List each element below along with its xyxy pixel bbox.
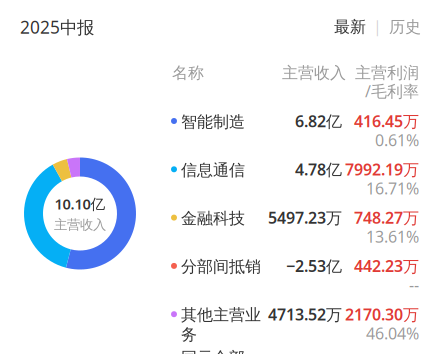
staticText: 13.61% — [366, 226, 419, 247]
staticText: 主营收入 — [54, 217, 106, 233]
staticText: 416.45万 — [354, 110, 419, 132]
staticText: 4713.52万 — [268, 304, 342, 325]
staticText: 46.04% — [366, 323, 419, 344]
staticText: 金融科技 — [181, 209, 245, 228]
button[interactable]: 分部间抵销 — [0, 0, 437, 354]
staticText: 6.82亿 — [295, 110, 342, 132]
staticText: -- — [409, 274, 419, 295]
staticText: /毛利率 — [365, 80, 419, 102]
button[interactable]: 其他主营业务 — [0, 0, 437, 354]
staticText: 信息通信 — [181, 160, 245, 180]
staticText: 智能制造 — [181, 112, 245, 132]
staticText: 分部间抵销 — [181, 257, 261, 277]
button[interactable]: 历史 — [383, 8, 427, 46]
staticText: 748.27万 — [354, 207, 419, 228]
staticText: 0.61% — [375, 129, 419, 151]
staticText: 主营收入 — [282, 63, 346, 83]
staticText: | — [373, 15, 382, 37]
button[interactable]: 金融科技 — [0, 0, 437, 354]
staticText: 最新 — [334, 17, 366, 37]
staticText: 16.71% — [366, 178, 419, 199]
staticText: −2.53亿 — [286, 255, 342, 276]
staticText: 7992.19万 — [345, 159, 419, 180]
button[interactable]: 2025中报 — [20, 6, 130, 47]
staticText: 其他主营业务 — [181, 305, 261, 344]
button[interactable]: 最新 — [328, 8, 372, 46]
button[interactable]: 智能制造 — [0, 0, 437, 354]
staticText: 2025中报 — [20, 15, 94, 38]
staticText: 442.23万 — [354, 255, 419, 276]
staticText: 主营利润 — [355, 63, 419, 83]
staticText: 4.78亿 — [295, 159, 342, 180]
staticText: 同元合部 — [181, 348, 245, 354]
button[interactable]: 同元合部 — [0, 0, 437, 354]
staticText: 2170.30万 — [345, 304, 419, 325]
button[interactable]: 信息通信 — [0, 0, 437, 354]
staticText: 历史 — [389, 17, 421, 37]
staticText: 10.10亿 — [54, 194, 105, 214]
staticText: 5497.23万 — [268, 207, 342, 228]
staticText: 名称 — [172, 63, 204, 83]
